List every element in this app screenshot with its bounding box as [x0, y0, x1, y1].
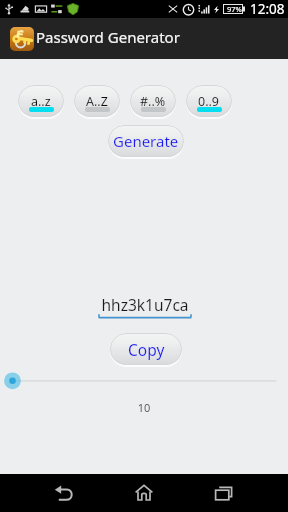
- button[interactable]: #..%: [130, 85, 176, 117]
- staticText: #..%: [140, 93, 166, 110]
- staticText: Copy: [128, 339, 165, 360]
- button[interactable]: Recent apps: [202, 474, 246, 512]
- button[interactable]: Back: [42, 474, 86, 512]
- button[interactable]: Copy: [110, 333, 182, 365]
- button[interactable]: A..Z: [74, 85, 120, 117]
- button[interactable]: Home: [122, 474, 166, 512]
- staticText: A..Z: [86, 93, 108, 110]
- staticText: 0..9: [198, 93, 220, 110]
- staticText: Generate: [113, 131, 179, 151]
- button[interactable]: Generated password: [98, 294, 192, 320]
- button[interactable]: Generate: [108, 125, 184, 157]
- staticText: Password Generator: [36, 27, 180, 47]
- button[interactable]: 0..9: [186, 85, 232, 117]
- staticText: 97%: [227, 4, 242, 14]
- staticText: 12:08: [250, 0, 285, 18]
- staticText: hhz3k1u7ca: [98, 294, 192, 315]
- button[interactable]: a..z: [18, 85, 64, 117]
- staticText: 10: [0, 400, 288, 415]
- button[interactable]: Password length: [0, 370, 288, 392]
- staticText: a..z: [31, 93, 51, 110]
